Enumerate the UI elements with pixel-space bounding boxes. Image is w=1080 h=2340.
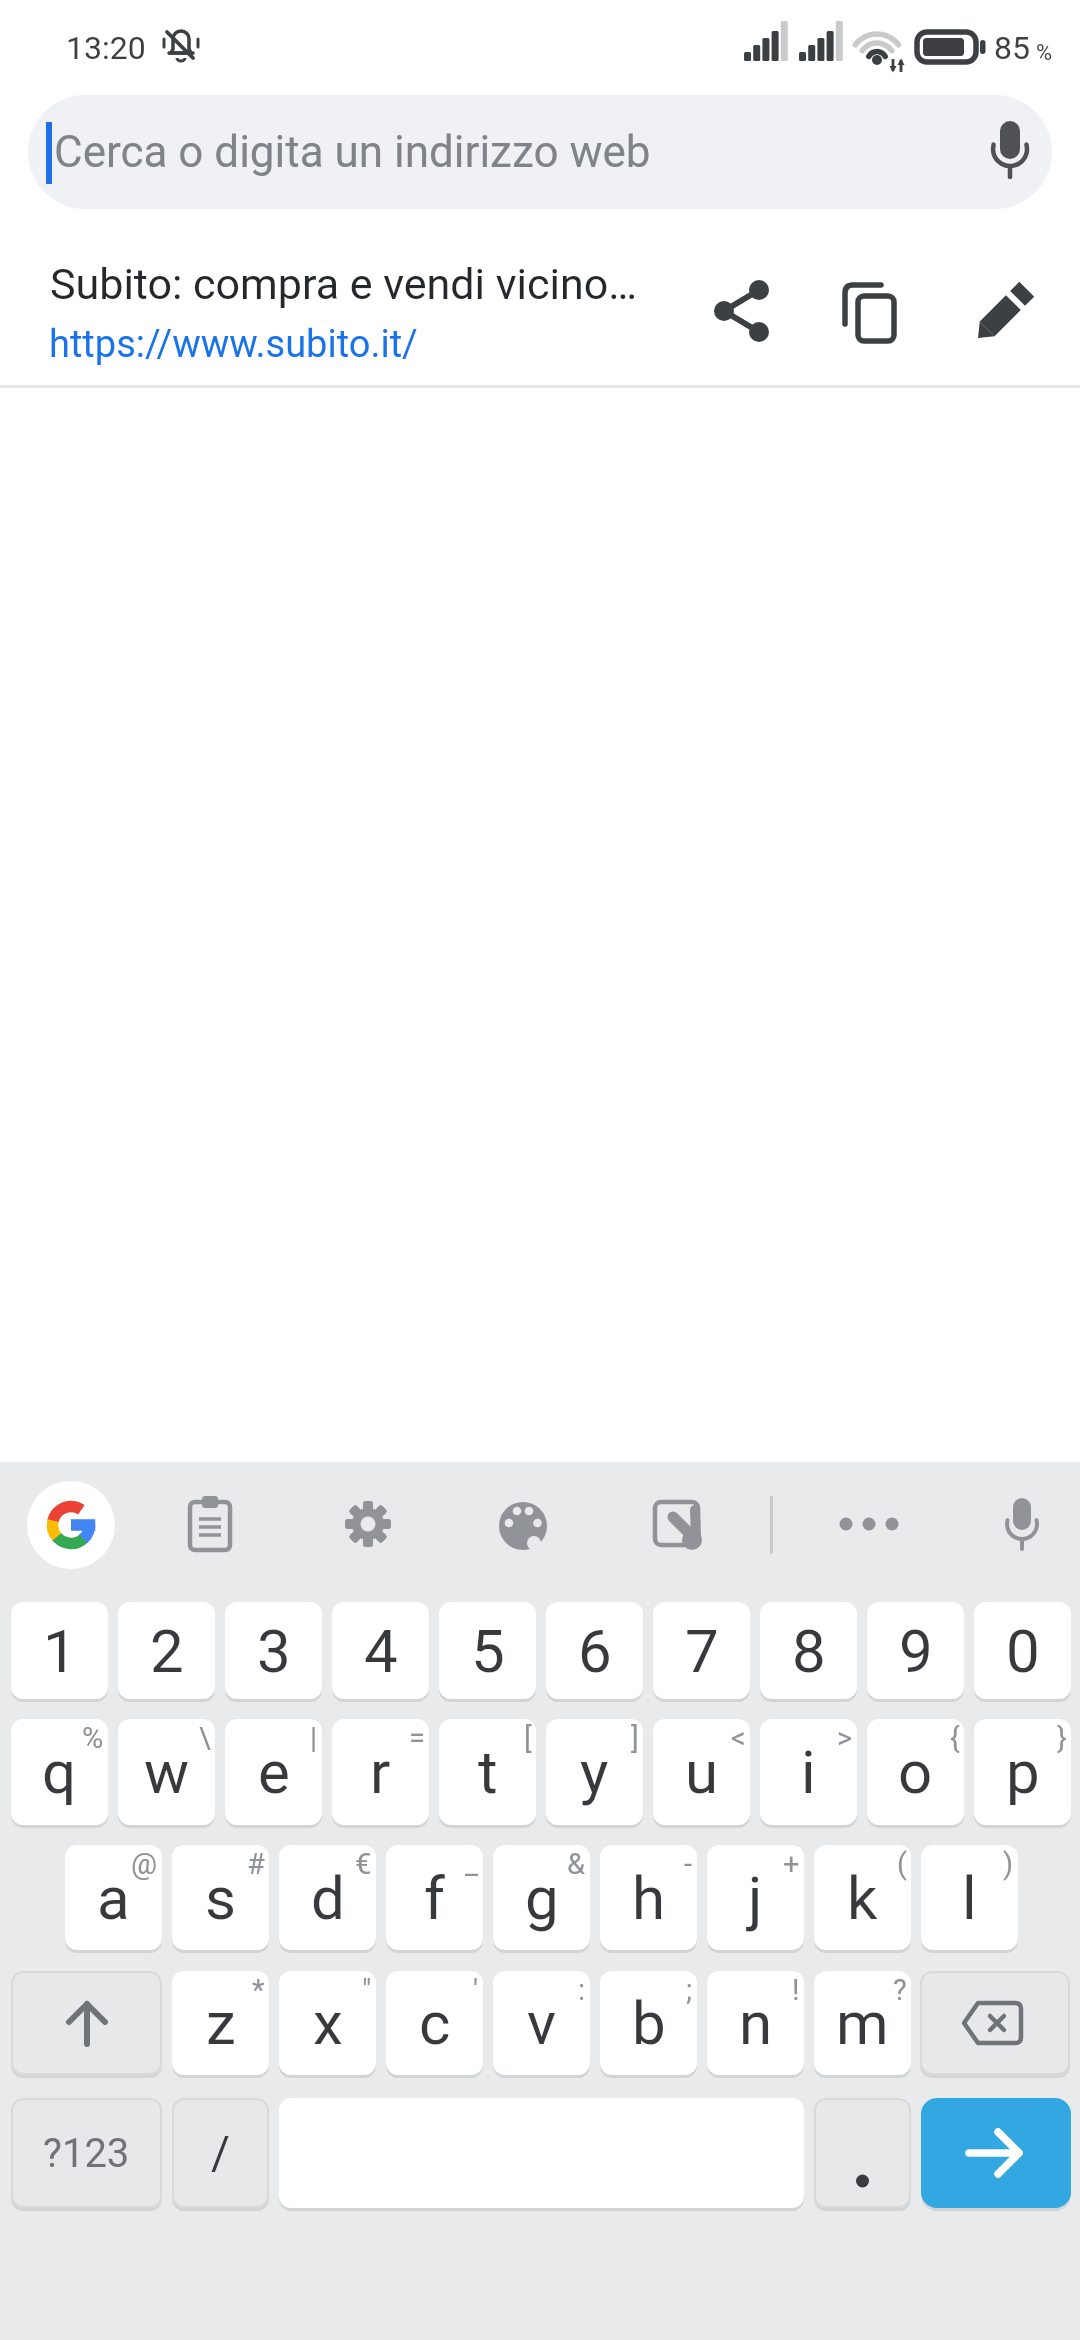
button[interactable]: 6 bbox=[546, 1602, 643, 1699]
staticText: t bbox=[478, 1737, 498, 1807]
button[interactable] bbox=[27, 1481, 115, 1569]
staticText: { bbox=[950, 1721, 960, 1755]
staticText: ) bbox=[1003, 1847, 1014, 1881]
staticText: \ bbox=[199, 1721, 211, 1755]
button[interactable] bbox=[834, 274, 904, 348]
button[interactable]: 3 bbox=[225, 1602, 322, 1699]
button[interactable] bbox=[499, 1502, 551, 1552]
staticText: r bbox=[370, 1737, 391, 1807]
button[interactable]: m bbox=[814, 1971, 911, 2075]
button[interactable]: e bbox=[225, 1719, 322, 1825]
staticText: 0 bbox=[1006, 1616, 1040, 1686]
staticText: o bbox=[898, 1737, 933, 1807]
button[interactable]: r bbox=[332, 1719, 429, 1825]
staticText: " bbox=[362, 1973, 372, 2007]
staticText: w bbox=[144, 1737, 190, 1807]
button[interactable]: s bbox=[172, 1845, 269, 1950]
button[interactable]: / bbox=[172, 2098, 269, 2208]
button[interactable]: b bbox=[600, 1971, 697, 2075]
button[interactable] bbox=[966, 272, 1038, 346]
button[interactable]: p bbox=[974, 1719, 1071, 1825]
button[interactable]: x bbox=[279, 1971, 376, 2075]
staticText: m bbox=[836, 1988, 889, 2058]
button[interactable]: c bbox=[386, 1971, 483, 2075]
staticText: x bbox=[313, 1988, 343, 2058]
staticText: # bbox=[247, 1847, 265, 1881]
button[interactable]: Subito: compra e vendi vicino… bbox=[0, 212, 1080, 386]
button[interactable] bbox=[840, 1502, 900, 1546]
staticText: ! bbox=[792, 1973, 800, 2007]
staticText: [ bbox=[524, 1721, 532, 1755]
staticText: https://www.subito.it/ bbox=[49, 322, 418, 367]
button[interactable]: a bbox=[65, 1845, 162, 1950]
button[interactable]: k bbox=[814, 1845, 911, 1950]
button[interactable] bbox=[1000, 1496, 1044, 1556]
button[interactable]: z bbox=[172, 1971, 269, 2075]
staticText: l bbox=[962, 1863, 977, 1933]
staticText: v bbox=[527, 1988, 557, 2058]
button[interactable]: n bbox=[707, 1971, 804, 2075]
staticText: < bbox=[731, 1721, 746, 1755]
button[interactable]: o bbox=[867, 1719, 964, 1825]
button[interactable] bbox=[652, 1498, 708, 1554]
staticText: 9 bbox=[899, 1616, 933, 1686]
button[interactable]: Cerca o digita un indirizzo web bbox=[28, 95, 1052, 209]
button[interactable]: i bbox=[760, 1719, 857, 1825]
button[interactable]: u bbox=[653, 1719, 750, 1825]
staticText: e bbox=[258, 1737, 290, 1807]
staticText: @ bbox=[131, 1847, 158, 1881]
button[interactable]: 8 bbox=[760, 1602, 857, 1699]
staticText: 8 bbox=[792, 1616, 826, 1686]
staticText: % bbox=[1036, 40, 1053, 66]
button[interactable]: l bbox=[921, 1845, 1018, 1950]
button[interactable]: 2 bbox=[118, 1602, 215, 1699]
button[interactable]: ?123 bbox=[11, 2098, 162, 2208]
staticText: a bbox=[97, 1863, 130, 1933]
button[interactable]: w bbox=[118, 1719, 215, 1825]
staticText: 1 bbox=[43, 1616, 77, 1686]
button[interactable]: 5 bbox=[439, 1602, 536, 1699]
staticText: * bbox=[252, 1973, 265, 2007]
staticText: d bbox=[311, 1863, 345, 1933]
button[interactable] bbox=[704, 274, 778, 348]
button[interactable]: 9 bbox=[867, 1602, 964, 1699]
button[interactable]: t bbox=[439, 1719, 536, 1825]
button[interactable] bbox=[921, 2098, 1071, 2208]
staticText: 7 bbox=[685, 1616, 719, 1686]
staticText: > bbox=[837, 1721, 853, 1755]
staticText: f bbox=[424, 1863, 445, 1933]
staticText: ?123 bbox=[43, 2130, 130, 2177]
button[interactable]: d bbox=[279, 1845, 376, 1950]
staticText: k bbox=[847, 1863, 878, 1933]
button[interactable]: j bbox=[707, 1845, 804, 1950]
button[interactable] bbox=[920, 1971, 1070, 2075]
staticText: ] bbox=[631, 1721, 639, 1755]
staticText: : bbox=[578, 1973, 586, 2007]
button[interactable] bbox=[814, 2098, 911, 2208]
button[interactable] bbox=[188, 1494, 236, 1556]
button[interactable]: 1 bbox=[11, 1602, 108, 1699]
staticText: + bbox=[783, 1847, 800, 1881]
button[interactable]: f bbox=[386, 1845, 483, 1950]
staticText: g bbox=[525, 1863, 559, 1933]
staticText: _ bbox=[465, 1847, 479, 1881]
button[interactable] bbox=[11, 1971, 162, 2075]
staticText: s bbox=[205, 1863, 236, 1933]
button[interactable]: y bbox=[546, 1719, 643, 1825]
button[interactable]: q bbox=[11, 1719, 108, 1825]
staticText: | bbox=[310, 1721, 318, 1755]
staticText: % bbox=[82, 1721, 104, 1755]
button[interactable]: 7 bbox=[653, 1602, 750, 1699]
button[interactable]: v bbox=[493, 1971, 590, 2075]
button[interactable] bbox=[344, 1500, 392, 1548]
button[interactable]: h bbox=[600, 1845, 697, 1950]
staticText: y bbox=[580, 1737, 609, 1807]
staticText: - bbox=[684, 1847, 693, 1881]
staticText: 3 bbox=[257, 1616, 291, 1686]
button[interactable]: 0 bbox=[974, 1602, 1071, 1699]
staticText: 2 bbox=[150, 1616, 184, 1686]
staticText: i bbox=[801, 1737, 816, 1807]
button[interactable]: g bbox=[493, 1845, 590, 1950]
button[interactable]: 4 bbox=[332, 1602, 429, 1699]
